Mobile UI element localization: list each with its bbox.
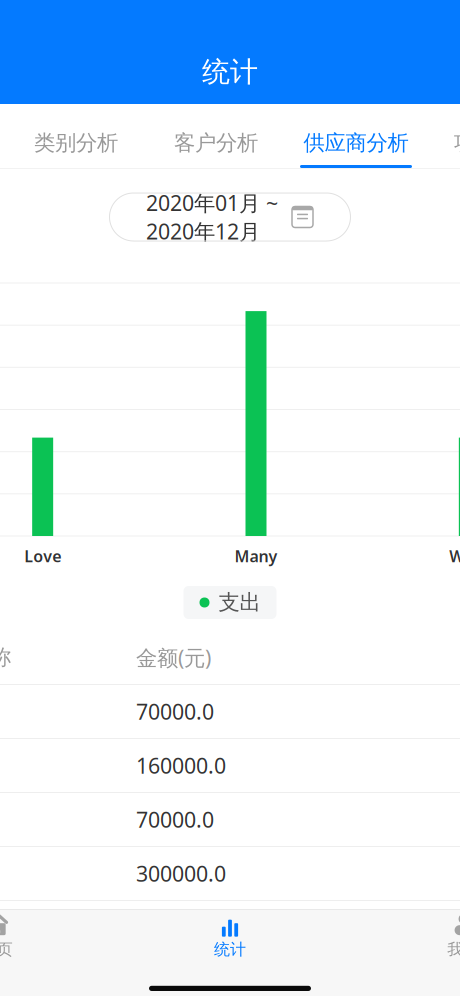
button[interactable]: 供应商分析 [286,104,426,168]
staticText: 70000.0 [136,805,214,834]
button[interactable]: 我的 [347,910,460,962]
staticText: 类别分析 [34,130,118,156]
button[interactable]: 支出 [183,586,276,619]
button[interactable]: 项目分析 [426,104,460,168]
button[interactable]: 统计 [113,910,347,962]
staticText: 项目分析 [454,130,460,156]
button[interactable]: 2020年01月 ~ 2020年12月 [109,193,350,241]
staticText: 70000.0 [136,697,214,726]
staticText: 支出 [218,589,260,616]
staticText: 客户分析 [174,130,258,156]
staticText: 2020年01月 ~ 2020年12月 [146,189,278,245]
staticText: 300000.0 [136,859,226,888]
staticText: 统计 [214,940,246,959]
staticText: Love [24,545,61,567]
button[interactable]: 客户分析 [146,104,286,168]
staticText: Many [234,545,277,567]
staticText: 供应商名称 [0,644,11,671]
staticText: 我的 [447,940,460,959]
staticText: 160000.0 [136,751,226,780]
staticText: 金额(元) [136,643,211,672]
button[interactable]: 类别分析 [6,104,146,168]
staticText: 供应商分析 [303,130,408,156]
staticText: 统计 [202,55,258,89]
staticText: 首页 [0,940,13,959]
staticText: What [449,545,460,567]
button[interactable]: 首页 [0,910,113,962]
